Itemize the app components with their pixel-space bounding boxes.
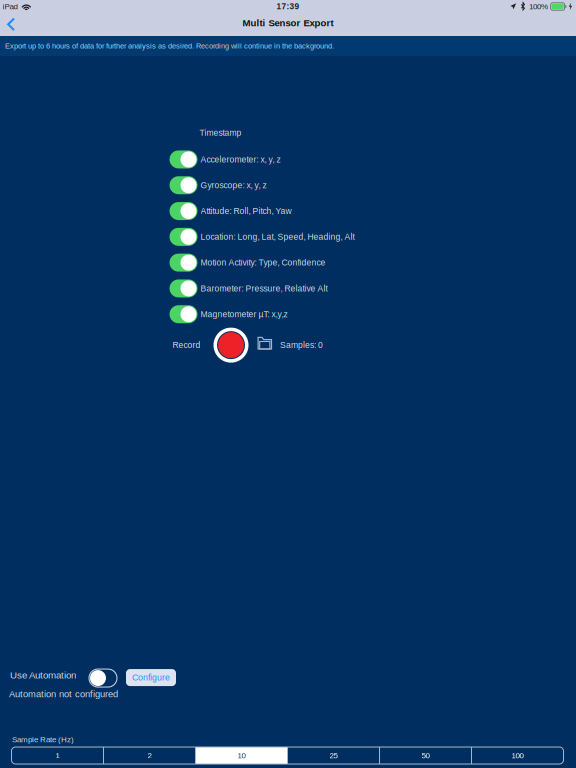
staticText: Use Automation [10, 670, 76, 680]
button[interactable]: Attitude: Roll, Pitch, Yaw [169, 198, 373, 224]
button[interactable]: 10 [196, 747, 287, 764]
staticText: Accelerometer: x, y, z [200, 155, 280, 164]
staticText: Magnetometer µT: x,y,z [200, 309, 287, 319]
staticText: 50 [421, 751, 429, 760]
staticText: 25 [329, 751, 337, 760]
button[interactable]: Use Automation [89, 669, 117, 687]
button[interactable]: Barometer: Pressure, Relative Alt [169, 275, 373, 301]
button[interactable]: 25 [288, 747, 379, 764]
staticText: Attitude: Roll, Pitch, Yaw [200, 206, 291, 216]
staticText: 17:39 [276, 2, 299, 11]
staticText: Multi Sensor Export [242, 18, 333, 28]
button[interactable]: Location: Long, Lat, Speed, Heading, Alt [169, 224, 373, 250]
staticText: Location: Long, Lat, Speed, Heading, Alt [200, 232, 354, 242]
staticText: Sample Rate (Hz) [12, 735, 74, 744]
button[interactable]: Motion Activity: Type, Confidence [169, 250, 373, 275]
staticText: Barometer: Pressure, Relative Alt [200, 284, 327, 293]
staticText: Motion Activity: Type, Confidence [200, 258, 325, 267]
staticText: 100 [511, 751, 523, 760]
staticText: 10 [237, 751, 245, 760]
staticText: 2 [147, 751, 151, 760]
button[interactable]: 2 [104, 747, 195, 764]
button[interactable]: Configure [126, 669, 176, 686]
staticText: Automation not configured [9, 689, 118, 699]
button[interactable]: Back [0, 13, 32, 36]
staticText: Samples: 0 [280, 340, 323, 350]
button[interactable]: 100 [472, 747, 563, 764]
staticText: iPad [2, 2, 17, 11]
staticText: Configure [132, 673, 170, 682]
button[interactable]: Gyroscope: x, y, z [169, 172, 373, 198]
button[interactable]: Accelerometer: x, y, z [169, 146, 373, 172]
button[interactable]: 50 [380, 747, 471, 764]
button[interactable]: 1 [12, 747, 103, 764]
button[interactable]: Record [213, 328, 248, 363]
staticText: Export up to 6 hours of data for further… [5, 42, 334, 50]
staticText: Gyroscope: x, y, z [200, 180, 266, 190]
button[interactable]: Magnetometer µT: x,y,z [169, 301, 373, 327]
staticText: 100% [529, 2, 548, 11]
staticText: Timestamp [199, 128, 241, 137]
staticText: 1 [55, 751, 59, 760]
staticText: Record [172, 340, 200, 350]
